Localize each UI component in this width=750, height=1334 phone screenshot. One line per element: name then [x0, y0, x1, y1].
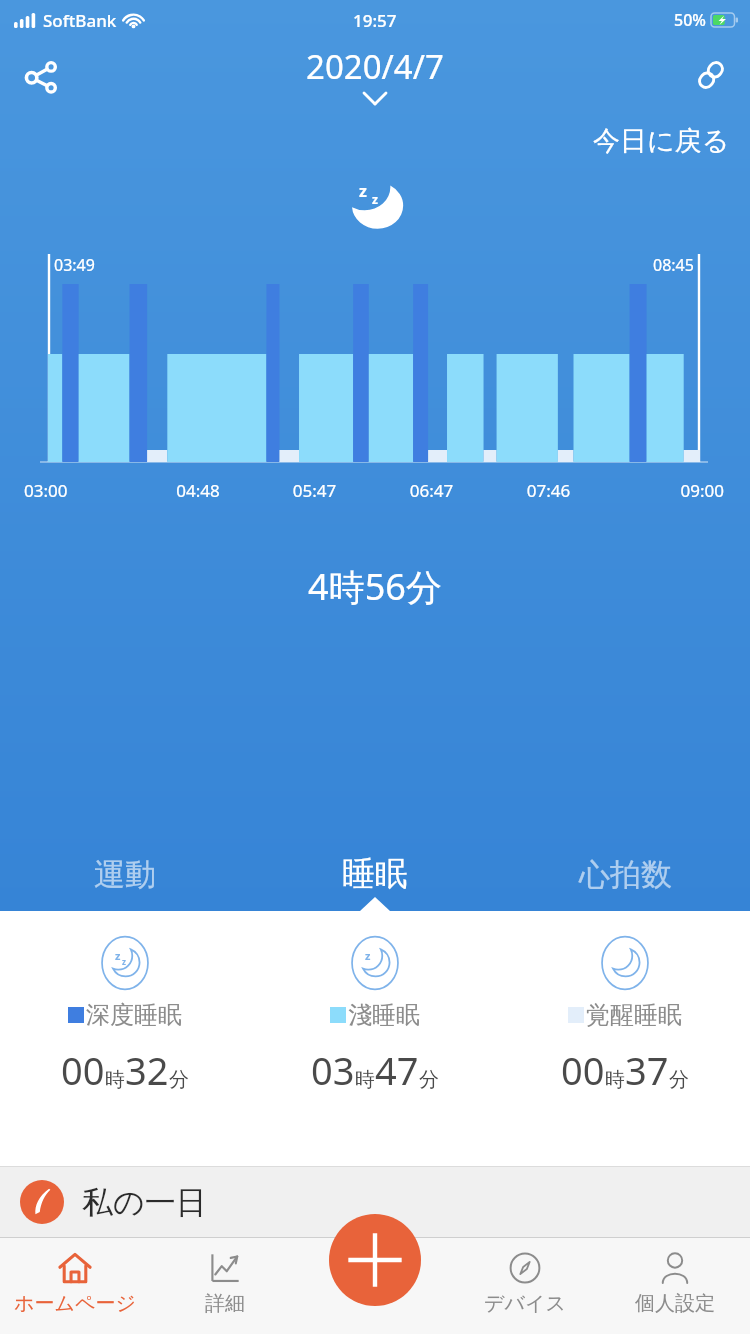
- staticText: 睡眠: [342, 853, 408, 895]
- staticText: 時: [605, 1067, 625, 1092]
- button[interactable]: 睡眠: [250, 839, 500, 909]
- staticText: 05:47: [256, 479, 373, 502]
- staticText: 07:46: [490, 479, 607, 502]
- staticText: z: [359, 180, 367, 202]
- button[interactable]: 2020/4/7: [306, 44, 444, 105]
- staticText: 淺睡眠: [348, 1000, 420, 1030]
- staticText: 00: [561, 1044, 605, 1096]
- button[interactable]: 私の一日: [0, 1167, 750, 1237]
- button[interactable]: Add: [329, 1214, 421, 1306]
- staticText: z: [372, 191, 378, 207]
- staticText: 運動: [94, 855, 156, 894]
- staticText: 03: [311, 1044, 355, 1096]
- staticText: 04:48: [140, 479, 256, 502]
- button[interactable]: ホームページ: [0, 1238, 150, 1334]
- staticText: z: [122, 956, 126, 967]
- staticText: 心拍数: [579, 855, 672, 894]
- staticText: 50%: [674, 9, 706, 31]
- staticText: ホームページ: [14, 1291, 136, 1316]
- staticText: 分: [669, 1067, 689, 1092]
- staticText: 時: [355, 1067, 375, 1092]
- staticText: 03:00: [24, 479, 140, 502]
- button[interactable]: 詳細: [150, 1238, 300, 1334]
- staticText: 個人設定: [635, 1291, 715, 1316]
- staticText: 覚醒睡眠: [586, 1000, 682, 1030]
- staticText: SoftBank: [43, 9, 117, 32]
- staticText: 私の一日: [82, 1183, 207, 1222]
- staticText: 03:49: [54, 254, 95, 276]
- button[interactable]: Link: [680, 44, 742, 106]
- staticText: 2020/4/7: [306, 44, 444, 89]
- staticText: 時: [105, 1067, 125, 1092]
- staticText: 分: [419, 1067, 439, 1092]
- staticText: z: [365, 948, 371, 963]
- staticText: 37: [625, 1044, 669, 1096]
- button[interactable]: デバイス: [450, 1238, 600, 1334]
- button[interactable]: 今日に戻る: [593, 124, 730, 158]
- staticText: 深度睡眠: [86, 1000, 182, 1030]
- staticText: 分: [169, 1067, 189, 1092]
- staticText: 09:00: [607, 479, 724, 502]
- staticText: z: [115, 948, 121, 963]
- button[interactable]: 心拍数: [500, 839, 750, 909]
- staticText: 06:47: [373, 479, 490, 502]
- button[interactable]: 運動: [0, 839, 250, 909]
- button[interactable]: Share: [8, 44, 74, 110]
- button[interactable]: 個人設定: [600, 1238, 750, 1334]
- staticText: 詳細: [205, 1291, 245, 1316]
- button[interactable]: 覚醒睡眠: [500, 935, 750, 1096]
- staticText: 4時56分: [0, 562, 750, 611]
- staticText: 08:45: [653, 254, 694, 276]
- button[interactable]: z: [0, 935, 250, 1096]
- staticText: デバイス: [484, 1291, 566, 1316]
- staticText: 32: [125, 1044, 169, 1096]
- button[interactable]: z: [250, 935, 500, 1096]
- staticText: 19:57: [353, 9, 397, 32]
- staticText: 00: [61, 1044, 105, 1096]
- staticText: 47: [375, 1044, 419, 1096]
